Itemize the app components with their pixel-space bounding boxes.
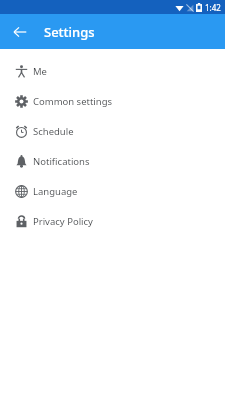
staticText: Common settings (33, 95, 113, 108)
button[interactable]: Schedule (0, 116, 225, 146)
staticText: Me (33, 65, 47, 78)
staticText: 1:42 (205, 2, 221, 13)
button[interactable]: Privacy Policy (0, 206, 225, 236)
button[interactable]: Notifications (0, 146, 225, 176)
staticText: Settings (44, 23, 95, 41)
button[interactable]: Common settings (0, 86, 225, 116)
button[interactable]: Back (8, 20, 32, 44)
staticText: Language (33, 185, 78, 198)
staticText: Notifications (33, 155, 90, 168)
staticText: Schedule (33, 125, 74, 138)
staticText: Privacy Policy (33, 215, 93, 228)
button[interactable]: Me (0, 56, 225, 86)
button[interactable]: Language (0, 176, 225, 206)
